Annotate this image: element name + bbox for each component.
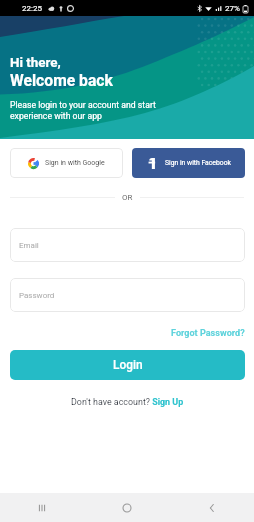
button[interactable]: Home [84, 493, 169, 522]
button[interactable]: Forgot Password? [171, 328, 245, 339]
staticText: Sign in with Google [45, 159, 105, 167]
staticText: 22:25 [22, 4, 42, 13]
staticText: OR [122, 193, 133, 202]
staticText: Hi there, [10, 55, 61, 71]
staticText: Sign in with Facebook [165, 159, 231, 167]
staticText: Welcome back [10, 71, 113, 89]
button[interactable]: Sign in with Google [10, 148, 123, 178]
button[interactable]: Sign in with Facebook [132, 148, 245, 178]
staticText: Login [113, 358, 143, 372]
button[interactable]: Don't have account? Sign Up [71, 397, 184, 407]
staticText: Password [19, 291, 55, 300]
button[interactable]: Recent apps [0, 493, 84, 522]
button[interactable]: Email [10, 228, 245, 262]
staticText: Email [19, 241, 39, 250]
button[interactable]: Back [169, 493, 254, 522]
button[interactable]: Login [10, 350, 245, 380]
staticText: 27% [225, 4, 240, 13]
staticText: Please login to your account and start e… [10, 100, 156, 121]
button[interactable]: Password [10, 278, 245, 312]
